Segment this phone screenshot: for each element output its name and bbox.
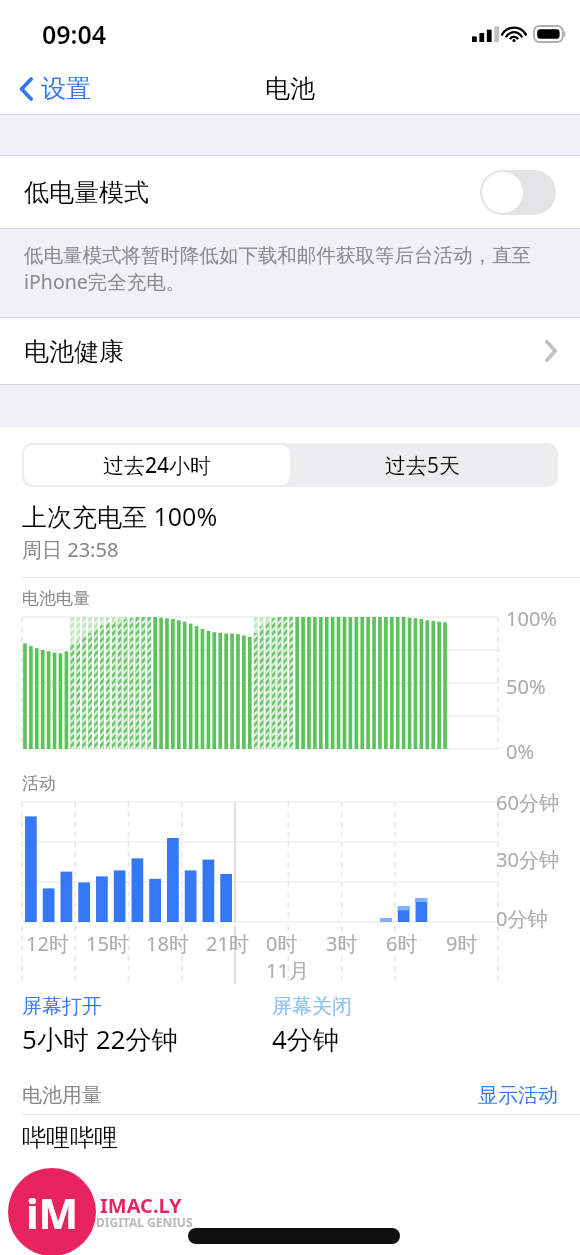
staticText: 电池健康 (24, 336, 544, 367)
other: 返回 (18, 76, 34, 102)
staticText: 11月23日 (266, 957, 326, 984)
button[interactable]: 显示活动 (478, 1083, 558, 1108)
staticText: 屏幕打开 (22, 994, 102, 1019)
staticText: iM (26, 1184, 79, 1241)
staticText: 0分钟 (496, 905, 548, 932)
staticText: 低电量模式将暂时降低如下载和邮件获取等后台活动，直至 iPhone完全充电。 (24, 243, 531, 295)
button[interactable]: 电池健康 (0, 318, 580, 384)
staticText: 3时 (326, 930, 358, 957)
button[interactable]: 返回 (14, 69, 95, 108)
staticText: 100% (506, 605, 557, 632)
staticText: 活动 (22, 773, 56, 794)
staticText: 周日 23:58 (22, 536, 119, 563)
staticText: 0% (506, 738, 535, 765)
staticText: DIGITAL GENIUS (96, 1214, 193, 1230)
staticText: 过去24小时 (103, 451, 212, 480)
staticText: 60分钟 (496, 789, 559, 816)
staticText: 12时 (26, 930, 69, 957)
staticText: 50% (506, 673, 546, 700)
staticText: IMAC.LY (100, 1192, 182, 1219)
staticText: 低电量模式 (24, 177, 480, 208)
staticText: 6时 (386, 930, 418, 957)
staticText: 30分钟 (496, 846, 559, 873)
staticText: 设置 (41, 73, 91, 104)
staticText: 电池 (265, 73, 315, 104)
button[interactable]: 低电量模式 (0, 156, 580, 228)
staticText: 上次充电至 100% (22, 499, 218, 533)
staticText: 09:04 (42, 17, 107, 51)
staticText: 5小时 22分钟 (22, 1021, 178, 1057)
staticText: 15时 (86, 930, 129, 957)
staticText: 4分钟 (272, 1021, 339, 1057)
staticText: 电池用量 (22, 1083, 478, 1108)
staticText: 0时 (266, 930, 298, 957)
staticText: 屏幕关闭 (272, 994, 352, 1019)
button[interactable]: 低电量模式开关 (480, 170, 556, 215)
staticText: 过去5天 (385, 451, 461, 480)
staticText: 21时 (206, 930, 249, 957)
staticText: 18时 (146, 930, 189, 957)
button[interactable]: 过去5天 (290, 445, 556, 485)
staticText: 显示活动 (478, 1083, 558, 1108)
staticText: 电池电量 (22, 588, 90, 609)
staticText: 9时 (446, 930, 478, 957)
button[interactable]: 过去24小时 (24, 445, 290, 485)
staticText: 哔哩哔哩 (22, 1123, 118, 1153)
